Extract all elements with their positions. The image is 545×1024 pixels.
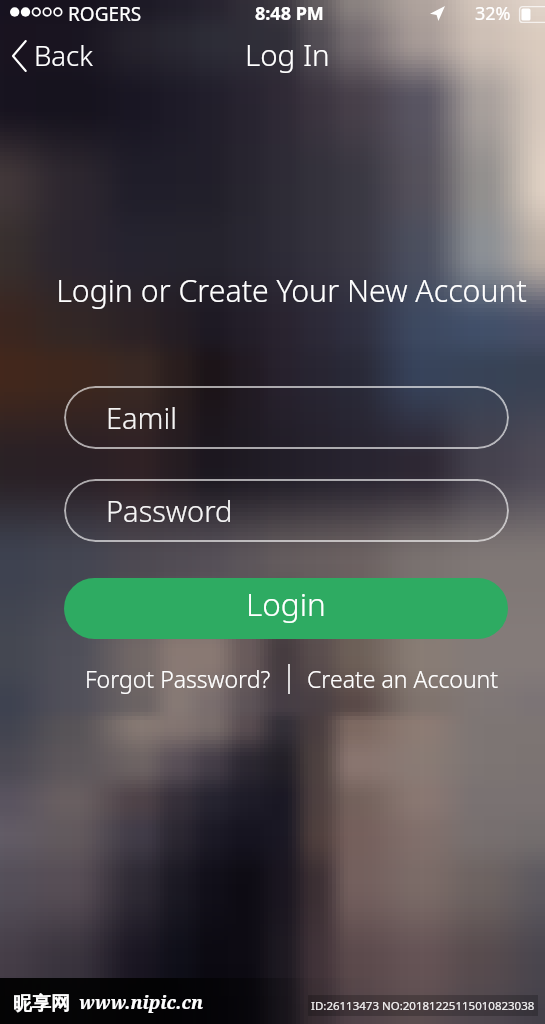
staticText: www.nipic.cn	[79, 990, 204, 1015]
staticText: Password	[106, 491, 233, 530]
staticText: Back	[34, 37, 93, 74]
staticText: Forgot Password?	[85, 663, 271, 694]
staticText: Login or Create Your New Account	[56, 270, 527, 310]
staticText: 8:48 PM	[255, 1, 324, 26]
staticText: Log In	[245, 34, 330, 74]
button[interactable]: Forgot Password?	[81, 659, 275, 698]
staticText: Create an Account	[307, 663, 499, 694]
staticText: ID:26113473 NO:20181225115010823038	[311, 998, 535, 1014]
button[interactable]: Password	[64, 479, 509, 542]
staticText: ROGERS	[68, 1, 142, 27]
staticText: 32%	[475, 1, 511, 26]
button[interactable]: Eamil	[64, 386, 509, 449]
button[interactable]: Create an Account	[303, 659, 503, 698]
button[interactable]: Login	[64, 578, 508, 639]
staticText: Eamil	[106, 398, 177, 437]
staticText: 昵享网	[13, 992, 70, 1016]
staticText: Login	[246, 582, 326, 625]
button[interactable]: Back	[4, 33, 105, 80]
